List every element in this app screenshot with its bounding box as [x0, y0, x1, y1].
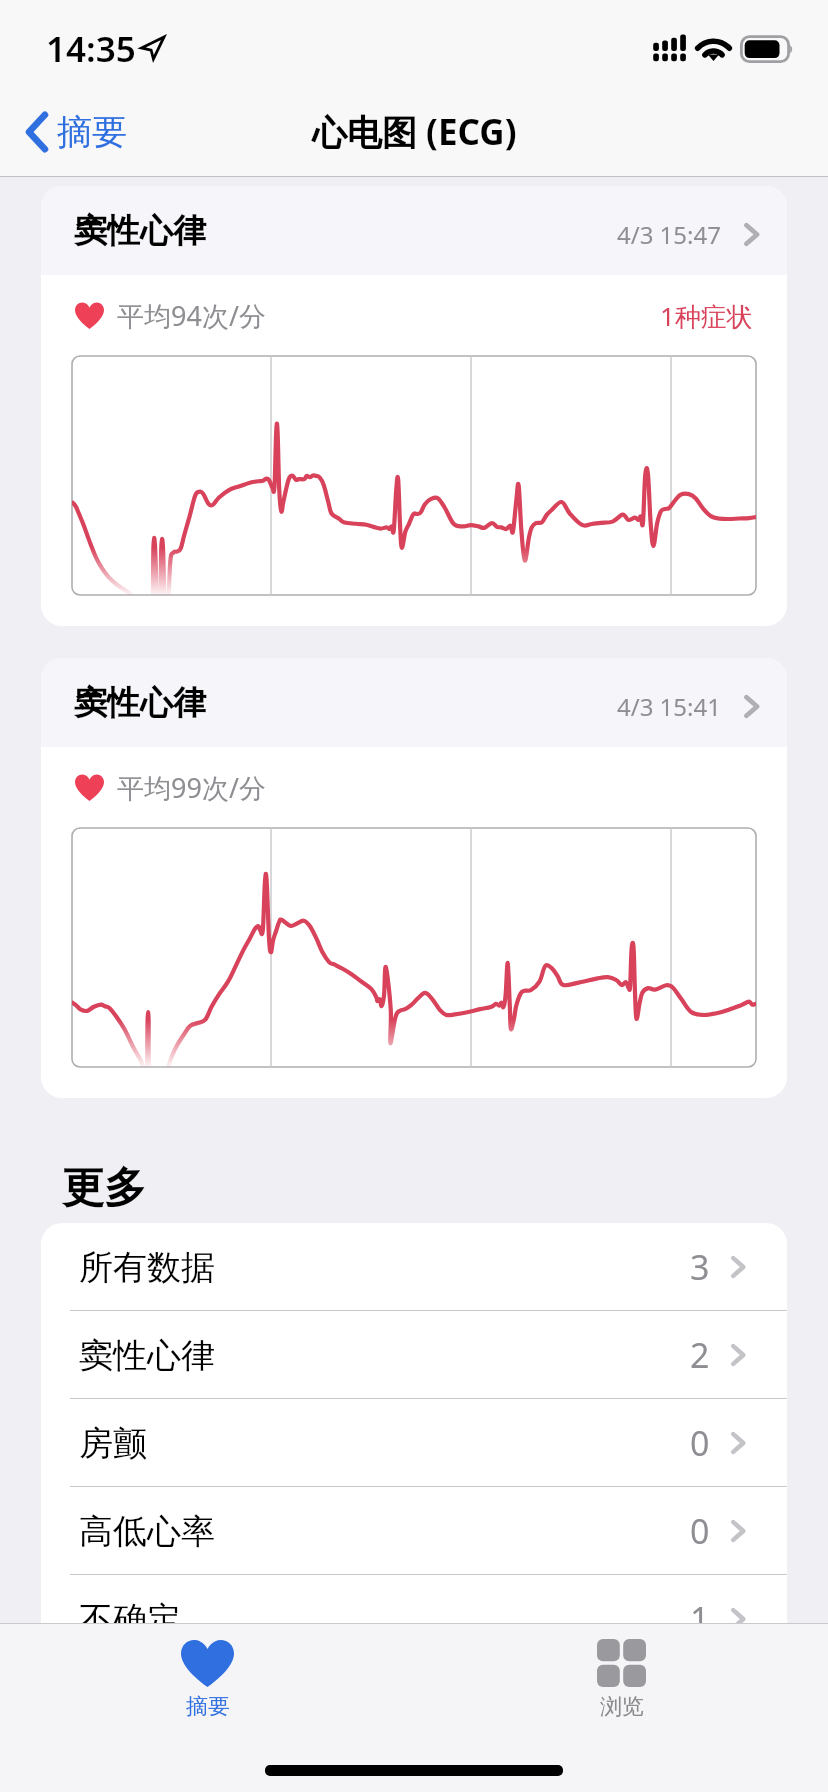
staticText: 0 [690, 1420, 710, 1466]
staticText: 高低心率 [79, 1510, 215, 1553]
staticText: 窦性心律 [74, 682, 206, 724]
staticText: 4/3 15:41 [617, 690, 721, 723]
staticText: 2 [690, 1332, 710, 1378]
button[interactable]: 窦性心律 [41, 658, 787, 1098]
staticText: 心电图 (ECG) [312, 108, 517, 156]
button[interactable]: 所有数据 [41, 1223, 787, 1311]
button[interactable]: 浏览 [557, 1624, 686, 1731]
button[interactable]: 摘要 [141, 1624, 274, 1731]
staticText: 房颤 [79, 1422, 147, 1465]
staticText: 窦性心律 [74, 210, 206, 252]
staticText: 低信号质量 [79, 1686, 249, 1729]
staticText: 窦性心律 [79, 1334, 215, 1377]
staticText: 浏览 [600, 1693, 644, 1721]
staticText: 1 [690, 1596, 710, 1642]
staticText: 摘要 [57, 110, 127, 154]
staticText: 摘要 [186, 1693, 230, 1721]
button[interactable]: 摘要 [0, 100, 143, 164]
button[interactable]: 高低心率 [41, 1487, 787, 1575]
button[interactable]: 房颤 [41, 1399, 787, 1487]
button[interactable]: 低信号质量 [41, 1663, 787, 1751]
staticText: 所有数据 [79, 1246, 215, 1289]
staticText: 不确定 [79, 1598, 181, 1641]
button[interactable]: 窦性心律 [41, 1311, 787, 1399]
staticText: 平均99次/分 [117, 769, 266, 806]
staticText: 0 [690, 1508, 710, 1554]
staticText: 1种症状 [660, 298, 753, 334]
staticText: 14:35 [46, 25, 136, 73]
button[interactable]: 不确定 [41, 1575, 787, 1663]
staticText: 4/3 15:47 [617, 218, 721, 251]
button[interactable]: 窦性心律 [41, 186, 787, 626]
staticText: 更多 [62, 1162, 146, 1215]
staticText: 3 [690, 1244, 710, 1290]
staticText: 平均94次/分 [117, 297, 266, 334]
